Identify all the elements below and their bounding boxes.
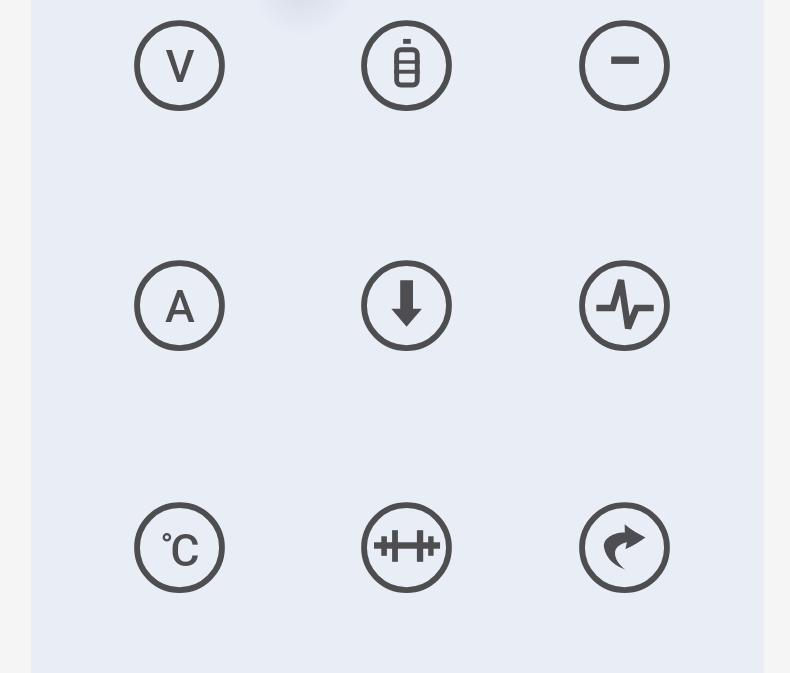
button[interactable]: Minus — [579, 20, 670, 111]
staticText: V — [165, 40, 195, 93]
button[interactable]: Download — [361, 260, 452, 351]
staticText: A — [165, 280, 195, 333]
button[interactable]: Battery level — [361, 20, 452, 111]
staticText: C — [170, 524, 200, 577]
button[interactable]: Pulse — [579, 260, 670, 351]
button[interactable]: Share — [579, 502, 670, 593]
button[interactable]: Workout — [361, 502, 452, 593]
button[interactable]: Volts — [134, 20, 225, 111]
button[interactable]: Amps — [134, 260, 225, 351]
button[interactable]: Degrees Celsius — [134, 502, 225, 593]
